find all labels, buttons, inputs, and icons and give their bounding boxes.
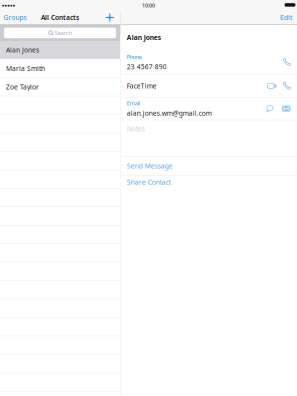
- button[interactable]: FaceTime audio: [282, 81, 291, 91]
- staticText: Notes: [127, 124, 145, 133]
- button[interactable]: Message: [266, 105, 274, 112]
- staticText: All Contacts: [41, 13, 79, 22]
- button[interactable]: FaceTime video: [267, 83, 276, 89]
- staticText: Edit: [280, 13, 292, 22]
- button[interactable]: Mail: [282, 106, 290, 112]
- button[interactable]: Alan Jones: [0, 41, 120, 59]
- staticText: 10:00: [142, 2, 155, 9]
- button[interactable]: Edit: [280, 11, 297, 24]
- button[interactable]: Share Contact: [121, 176, 297, 194]
- staticText: Send Message: [127, 161, 173, 170]
- button[interactable]: Call 23 4567 890: [121, 50, 297, 74]
- staticText: Phone: [127, 53, 142, 60]
- staticText: Alan Jones: [6, 45, 39, 54]
- staticText: Groups: [3, 13, 26, 22]
- button[interactable]: Send Message: [121, 157, 297, 175]
- staticText: Maria Smith: [6, 64, 45, 73]
- staticText: FaceTime: [127, 82, 157, 90]
- staticText: Alan Jones: [127, 33, 161, 42]
- button[interactable]: Add contact: [106, 12, 120, 23]
- staticText: Search: [55, 29, 72, 36]
- button[interactable]: Groups: [0, 11, 26, 24]
- button[interactable]: Zoe Taylor: [0, 78, 120, 96]
- button[interactable]: Maria Smith: [0, 59, 120, 77]
- staticText: Share Contact: [127, 178, 171, 187]
- staticText: Email: [127, 100, 140, 107]
- staticText: Zoe Taylor: [6, 82, 39, 91]
- staticText: 23 4567 890: [127, 62, 167, 71]
- staticText: alan.jones.wm@gmail.com: [127, 109, 212, 118]
